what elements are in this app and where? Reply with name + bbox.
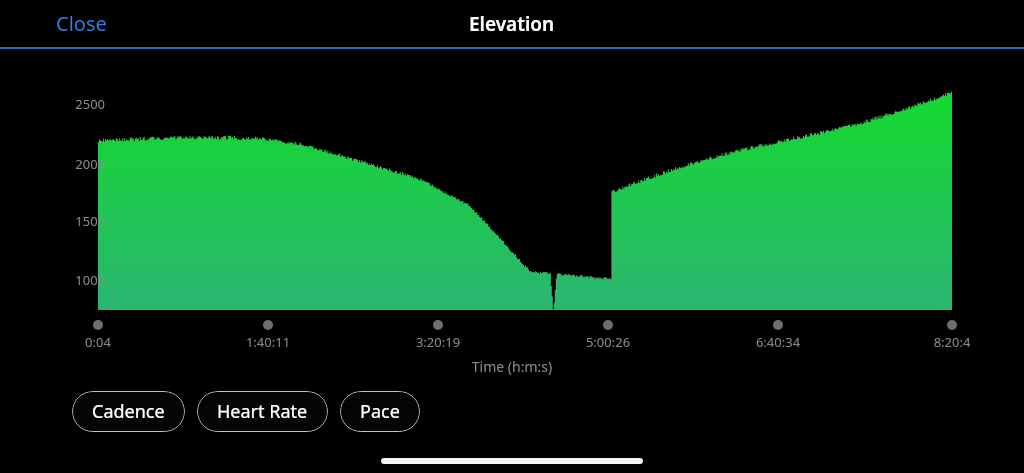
staticText: 6:40:34	[738, 333, 818, 351]
staticText: Cadence	[92, 399, 165, 424]
staticText: Time (h:m:s)	[0, 357, 1024, 376]
staticText: Pace	[360, 399, 400, 424]
staticText: Heart Rate	[217, 399, 308, 424]
button[interactable]: Cadence	[72, 391, 185, 432]
staticText: 1:40:11	[228, 333, 308, 351]
staticText: 2500	[61, 95, 105, 113]
staticText: Close	[56, 10, 107, 37]
button[interactable]: Close	[48, 4, 115, 43]
staticText: 0:04	[58, 333, 138, 351]
staticText: 3:20:19	[398, 333, 478, 351]
staticText: 1000	[61, 271, 105, 289]
staticText: 8:20:4	[912, 333, 992, 351]
staticText: 2000	[61, 155, 105, 173]
staticText: 5:00:26	[568, 333, 648, 351]
button[interactable]: Pace	[340, 391, 420, 432]
button[interactable]: Heart Rate	[197, 391, 328, 432]
staticText: Elevation	[469, 11, 555, 37]
staticText: 1500	[61, 212, 105, 230]
